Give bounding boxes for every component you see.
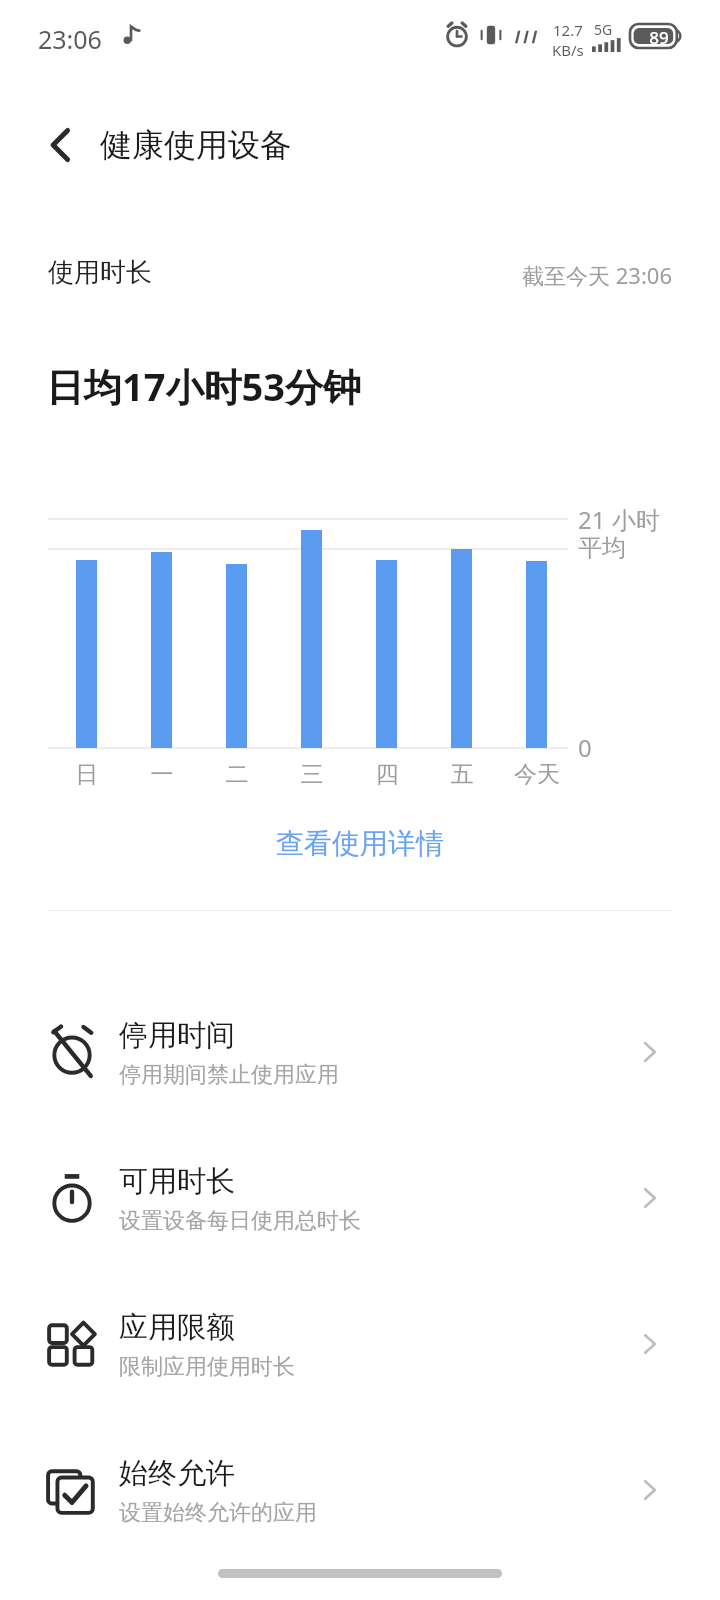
staticText: 四 [347, 760, 427, 789]
staticText: 三 [272, 760, 352, 789]
staticText: 停用期间禁止使用应用 [119, 1061, 339, 1089]
staticText: 限制应用使用时长 [119, 1353, 295, 1381]
button[interactable]: 查看使用详情 [0, 812, 720, 874]
staticText: 23:06 [38, 22, 102, 56]
button[interactable]: 应用限额 [0, 1271, 720, 1417]
button[interactable]: 始终允许 [0, 1417, 720, 1563]
staticText: 二 [197, 760, 277, 789]
staticText: 截至今天 23:06 [456, 260, 672, 290]
staticText: 21 小时 [578, 503, 660, 536]
staticText: 一 [122, 760, 202, 789]
staticText: 设置始终允许的应用 [119, 1499, 317, 1527]
staticText: 查看使用详情 [276, 826, 444, 861]
button[interactable]: 可用时长 [0, 1125, 720, 1271]
staticText: 始终允许 [119, 1455, 235, 1492]
staticText: 12.7 [553, 20, 583, 40]
staticText: 平均 [578, 533, 626, 563]
staticText: 停用时间 [119, 1017, 235, 1054]
staticText: 5G [594, 20, 613, 39]
button[interactable]: 停用时间 [0, 979, 720, 1125]
staticText: 设置设备每日使用总时长 [119, 1207, 361, 1235]
staticText: 使用时长 [48, 256, 152, 289]
staticText: 89 [638, 26, 680, 49]
staticText: 可用时长 [119, 1163, 235, 1200]
staticText: 今天 [497, 760, 577, 789]
staticText: 应用限额 [119, 1309, 235, 1346]
button[interactable]: Back [28, 112, 94, 178]
staticText: 0 [578, 731, 592, 764]
staticText: KB/s [552, 40, 584, 60]
staticText: 五 [422, 760, 502, 789]
staticText: 健康使用设备 [100, 125, 292, 165]
staticText: 日均17小时53分钟 [46, 360, 361, 412]
staticText: 日 [47, 760, 127, 789]
